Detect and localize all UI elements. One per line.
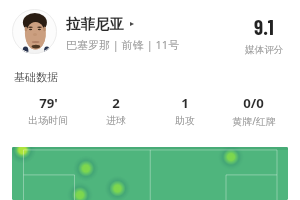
button[interactable]: 9.1: [235, 14, 293, 56]
button[interactable]: 1: [150, 94, 219, 127]
staticText: 9.1: [254, 14, 274, 39]
button[interactable]: Player photo: [12, 9, 57, 54]
staticText: 0/0: [243, 94, 264, 112]
staticText: 拉菲尼亚: [66, 15, 124, 33]
staticText: 进球: [106, 114, 126, 127]
staticText: 出场时间: [28, 114, 68, 127]
staticText: 1: [181, 94, 189, 112]
button[interactable]: Heat map: [12, 147, 288, 200]
button[interactable]: 79': [14, 94, 82, 127]
staticText: 黄牌/红牌: [232, 114, 276, 128]
staticText: 媒体评分: [245, 44, 284, 56]
staticText: 2: [112, 94, 120, 112]
button[interactable]: 拉菲尼亚: [66, 15, 134, 33]
staticText: 巴塞罗那 | 前锋 | 11号: [66, 37, 180, 52]
staticText: 助攻: [175, 114, 195, 127]
staticText: 79': [39, 94, 58, 112]
staticText: 基础数据: [14, 70, 58, 84]
button[interactable]: 2: [82, 94, 150, 127]
button[interactable]: 0/0: [219, 94, 288, 128]
